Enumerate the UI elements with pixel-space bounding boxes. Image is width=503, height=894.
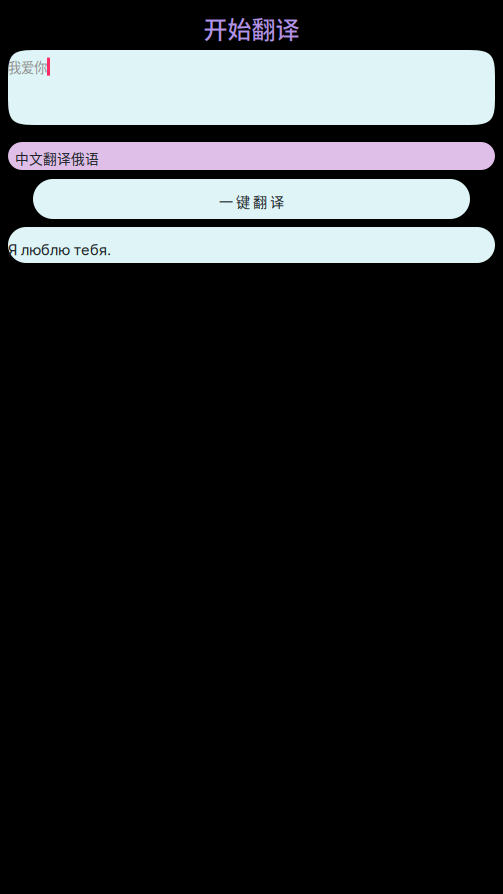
staticText: 一 键 翻 译 <box>219 191 284 211</box>
staticText: 我爱你 <box>8 57 47 76</box>
staticText: 中文翻译俄语 <box>15 148 99 168</box>
staticText: 开始翻译 <box>203 11 299 45</box>
button[interactable]: 一 键 翻 译 <box>33 179 470 219</box>
staticText: Я люблю тебя. <box>8 241 111 259</box>
button[interactable]: 中文翻译俄语 <box>8 142 495 170</box>
